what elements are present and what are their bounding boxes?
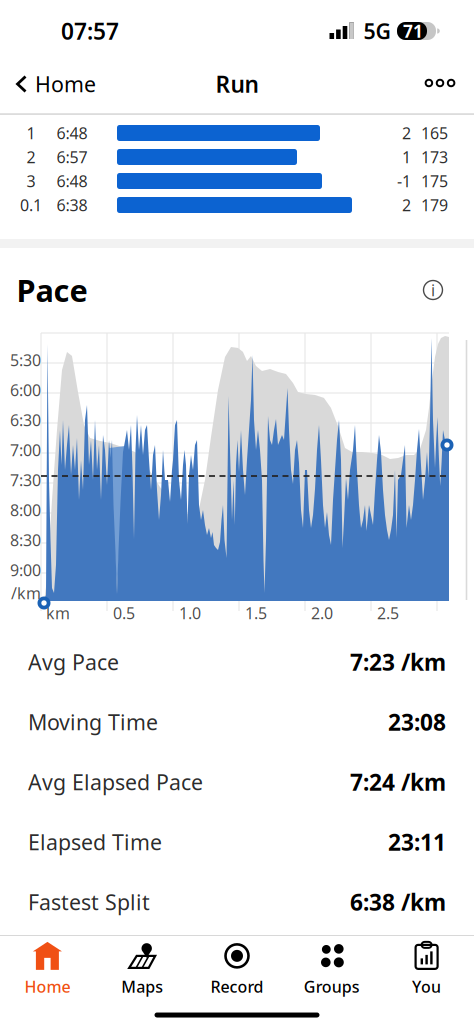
staticText: Pace [16,270,87,310]
staticText: 9:00 [10,559,41,581]
staticText: 3 [26,170,35,192]
staticText: 2 [26,146,35,168]
staticText: Run [215,69,258,99]
staticText: 23:08 [388,707,446,737]
staticText: Avg Pace [28,648,119,676]
button[interactable]: More options [426,80,454,86]
staticText: Maps [121,976,163,997]
staticText: /km [11,582,41,604]
staticText: 1 [402,146,411,168]
button[interactable]: Back [16,70,96,98]
staticText: Moving Time [28,708,158,736]
staticText: 2.5 [377,602,399,624]
staticText: 0.1 [20,194,42,216]
staticText: 6:48 [56,122,87,144]
staticText: 07:57 [61,16,119,46]
staticText: 6:38 [56,194,87,216]
staticText: 6:00 [10,379,41,401]
button[interactable]: Pace info [423,279,442,301]
staticText: Home [35,70,96,98]
staticText: 179 [421,194,448,216]
staticText: 8:30 [10,529,41,551]
staticText: 7:30 [10,469,41,491]
staticText: 5G [363,17,390,45]
staticText: You [412,976,441,997]
staticText: 0.5 [113,602,135,624]
staticText: Groups [304,976,360,997]
staticText: 5:30 [10,349,41,371]
staticText: 2 [402,194,411,216]
staticText: 7:23 /km [350,647,446,677]
button[interactable]: Maps [95,938,190,1000]
staticText: 165 [421,122,448,144]
staticText: 2 [402,122,411,144]
staticText: 7:24 /km [350,767,446,797]
staticText: -1 [397,170,411,192]
staticText: Elapsed Time [28,828,162,856]
staticText: 1.5 [245,602,267,624]
staticText: 2.0 [311,602,333,624]
staticText: 23:11 [388,827,446,857]
button[interactable]: Record [190,938,284,1000]
staticText: 71 [403,19,423,42]
staticText: 173 [421,146,448,168]
staticText: 6:48 [56,170,87,192]
staticText: 1.0 [179,602,201,624]
staticText: Fastest Split [28,888,150,916]
button[interactable]: You [379,938,474,1000]
staticText: Home [24,976,70,997]
staticText: 175 [421,170,448,192]
staticText: 8:00 [10,499,41,521]
button[interactable]: Home [0,938,95,1000]
staticText: 6:38 /km [350,887,446,917]
staticText: 1 [26,122,35,144]
staticText: Avg Elapsed Pace [28,768,203,796]
staticText: km [46,602,70,624]
staticText: 7:00 [10,439,41,461]
staticText: Record [210,976,263,997]
staticText: 6:57 [56,146,87,168]
staticText: i [431,279,435,301]
button[interactable]: Groups [284,938,379,1000]
staticText: 6:30 [10,409,41,431]
